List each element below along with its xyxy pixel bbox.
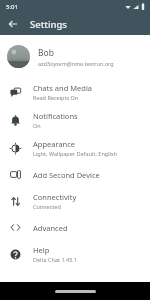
staticText: Connected [33,203,61,210]
staticText: azd3oysvm@nine.testrun.org [38,60,114,67]
staticText: Delta Chat 1.45.1 [33,256,77,263]
staticText: Chats and Media [33,83,93,93]
staticText: Help [33,245,50,255]
button[interactable]: Bob [0,40,150,73]
button[interactable]: Chats and Media [0,78,150,106]
button[interactable]: Notifications [0,106,150,134]
staticText: On [33,122,41,129]
staticText: Settings [30,18,67,31]
staticText: Notifications [33,111,78,121]
button[interactable]: Connectivity [0,187,150,215]
button[interactable]: Advanced [0,215,150,240]
button[interactable]: Back [4,15,22,33]
staticText: Light, Wallpaper Default, English [33,150,118,157]
button[interactable]: Appearance [0,134,150,162]
staticText: Bob [38,47,54,59]
staticText: Advanced [33,223,68,233]
button[interactable]: Add Second Device [0,162,150,187]
staticText: Connectivity [33,192,77,202]
staticText: Read Receipts On [33,94,79,101]
staticText: 5:01 [6,3,18,11]
staticText: Add Second Device [33,170,100,180]
staticText: Appearance [33,139,76,149]
button[interactable]: Help [0,240,150,268]
